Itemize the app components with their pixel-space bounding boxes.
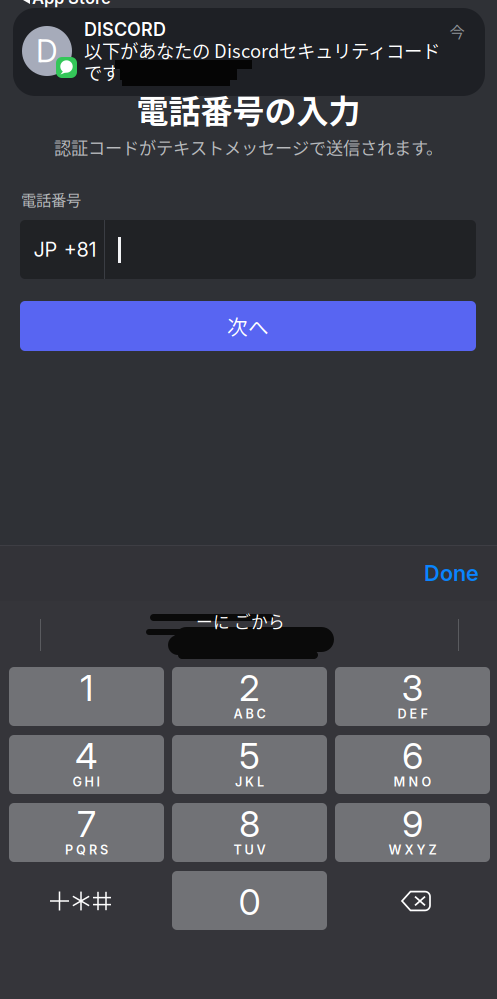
staticText: W X Y Z xyxy=(388,842,436,858)
button[interactable]: 1 xyxy=(9,667,164,726)
staticText: 以下があなたの Discordセキュリティコード xyxy=(84,37,440,63)
button[interactable]: Delete xyxy=(335,871,490,930)
staticText: 8 xyxy=(239,802,260,846)
staticText: 3 xyxy=(401,666,423,710)
staticText: D xyxy=(36,32,58,69)
button[interactable]: 4 xyxy=(9,735,164,794)
staticText: 0 xyxy=(238,880,260,924)
button[interactable]: 0 xyxy=(172,871,327,930)
staticText: 認証コードがテキストメッセージで送信されます。 xyxy=(54,134,443,159)
staticText: ーに ごから xyxy=(196,609,285,633)
button[interactable]: Done xyxy=(407,554,479,592)
staticText: 6 xyxy=(402,734,423,778)
button[interactable]: Plus, star and hash xyxy=(9,871,164,930)
staticText: 今 xyxy=(449,20,464,42)
staticText: P Q R S xyxy=(65,842,108,858)
button[interactable]: 次へ xyxy=(20,301,476,351)
staticText: D E F xyxy=(397,706,427,722)
staticText: Done xyxy=(424,560,479,586)
staticText: 1 xyxy=(80,666,93,710)
button[interactable]: 8 xyxy=(172,803,327,862)
button[interactable]: 3 xyxy=(335,667,490,726)
button[interactable]: 9 xyxy=(335,803,490,862)
staticText: A B C xyxy=(233,706,265,722)
staticText: 2 xyxy=(239,666,260,710)
button[interactable]: 7 xyxy=(9,803,164,862)
staticText: T U V xyxy=(233,842,265,858)
staticText: 5 xyxy=(239,734,260,778)
staticText: JP +81 xyxy=(33,237,96,262)
staticText: 4 xyxy=(75,734,98,778)
button[interactable]: 2 xyxy=(172,667,327,726)
staticText: DISCORD xyxy=(84,19,166,40)
staticText: App Store xyxy=(32,0,111,8)
button[interactable]: 6 xyxy=(335,735,490,794)
staticText: J K L xyxy=(235,774,264,790)
staticText: 次へ xyxy=(227,311,269,341)
staticText: 7 xyxy=(77,802,96,846)
staticText: 電話番号 xyxy=(21,188,81,210)
staticText: M N O xyxy=(393,774,431,790)
staticText: 9 xyxy=(402,802,423,846)
staticText: です xyxy=(84,59,120,85)
staticText: 電話番号の入力 xyxy=(136,86,360,132)
staticText: G H I xyxy=(72,774,100,790)
button[interactable]: 5 xyxy=(172,735,327,794)
